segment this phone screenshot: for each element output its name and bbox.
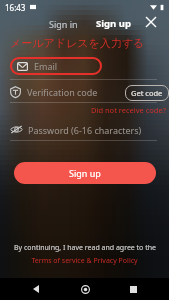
button[interactable]: Get code: [125, 85, 169, 101]
staticText: Sign in: [49, 18, 78, 30]
staticText: Verification code: [27, 86, 98, 98]
staticText: Sign up: [69, 167, 101, 179]
button[interactable]: Close: [142, 13, 160, 31]
staticText: メールアドレスを入力する: [10, 36, 145, 50]
staticText: Password (6-16 characters): [28, 124, 142, 136]
staticText: Terms of service & Privacy Policy: [31, 256, 138, 266]
staticText: By continuing, I have read and agree to …: [14, 243, 156, 253]
button[interactable]: Sign in: [43, 16, 84, 32]
button[interactable]: Back: [24, 278, 48, 300]
button[interactable]: Home: [73, 278, 97, 300]
button[interactable]: Terms of service & Privacy Policy: [31, 256, 138, 266]
button[interactable]: Email: [10, 57, 102, 75]
staticText: Did not receive code?: [91, 105, 166, 115]
staticText: Sign up: [96, 17, 131, 30]
button[interactable]: Did not receive code?: [91, 105, 166, 115]
button[interactable]: Password (6-16 characters): [10, 122, 142, 137]
button[interactable]: Verification code: [10, 84, 98, 99]
staticText: 16:43: [5, 2, 26, 13]
button[interactable]: Sign up: [90, 15, 137, 32]
staticText: Get code: [131, 88, 163, 98]
staticText: Email: [34, 60, 58, 72]
button[interactable]: Sign up: [14, 162, 156, 184]
button[interactable]: Recents: [121, 278, 145, 300]
